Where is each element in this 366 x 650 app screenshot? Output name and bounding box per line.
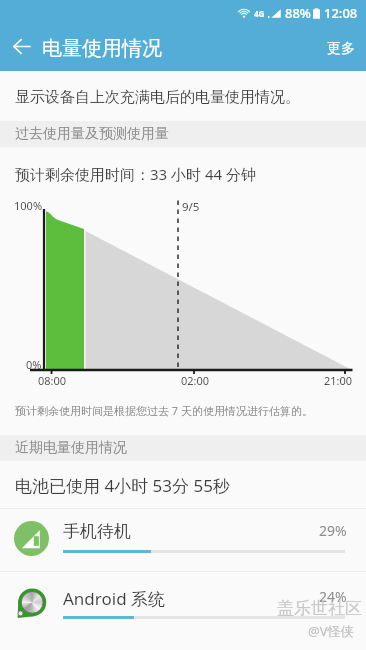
staticText: 电池已使用 4小时 53分 55秒 (15, 474, 230, 497)
button[interactable]: 更多 (312, 28, 366, 70)
staticText: 预计剩余使用时间是根据您过去 7 天的使用情况进行估算的。 (15, 403, 314, 418)
button[interactable]: Android 系统 (0, 587, 366, 637)
staticText: 9/5 (182, 199, 200, 215)
staticText: 更多 (327, 40, 355, 58)
staticText: 近期电量使用情况 (15, 439, 127, 457)
staticText: 显示设备自上次充满电后的电量使用情况。 (15, 88, 300, 107)
button[interactable]: 手机待机 (0, 521, 366, 571)
staticText: 02:00 (181, 373, 210, 388)
staticText: 08:00 (38, 373, 67, 388)
staticText: 100% (14, 198, 43, 213)
staticText: 12:08 (324, 4, 358, 22)
staticText: Android 系统 (63, 587, 166, 610)
staticText: @V怪侠 (308, 622, 354, 640)
staticText: 24% (319, 587, 347, 606)
staticText: 预计剩余使用时间：33 小时 44 分钟 (15, 164, 257, 184)
staticText: 手机待机 (63, 521, 131, 542)
staticText: 电量使用情况 (42, 36, 162, 61)
staticText: 0% (26, 357, 42, 372)
staticText: 29% (319, 521, 347, 540)
staticText: 盖乐世社区 (277, 598, 362, 619)
staticText: 21:00 (324, 373, 353, 388)
button[interactable]: Back (0, 26, 42, 71)
staticText: 88% (285, 4, 311, 22)
staticText: 过去使用量及预测使用量 (15, 125, 169, 143)
staticText: 4G (254, 8, 265, 19)
